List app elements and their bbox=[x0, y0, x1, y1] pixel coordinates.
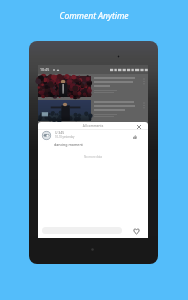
staticText: All comments bbox=[38, 124, 148, 128]
button[interactable]: Favorite bbox=[130, 224, 143, 237]
button[interactable]: Close bbox=[134, 122, 144, 132]
staticText: 10:45 bbox=[40, 67, 50, 72]
staticText: 10-10 yesterday bbox=[55, 135, 75, 139]
staticText: Comment Anytime bbox=[0, 10, 188, 22]
staticText: dancing moment bbox=[54, 142, 83, 147]
staticText: No more data bbox=[38, 155, 148, 159]
staticText: U 345 bbox=[55, 130, 65, 135]
button[interactable]: Like bbox=[130, 132, 140, 142]
